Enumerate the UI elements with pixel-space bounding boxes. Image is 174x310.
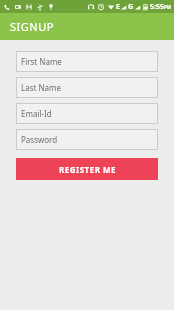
staticText: Password [21,134,58,145]
button[interactable]: REGISTER ME [16,158,158,180]
staticText: Last Name [21,82,62,93]
staticText: Email-Id [21,108,52,119]
staticText: SIGNUP [10,19,54,34]
staticText: E [116,2,120,12]
staticText: G [128,2,134,12]
staticText: 5:55 [150,2,164,12]
button[interactable]: Password [16,129,158,150]
button[interactable]: Email-Id [16,103,158,124]
button[interactable]: First Name [16,51,158,72]
staticText: First Name [21,56,62,67]
staticText: PM [164,4,172,10]
staticText: REGISTER ME [59,164,116,175]
button[interactable]: Last Name [16,77,158,98]
